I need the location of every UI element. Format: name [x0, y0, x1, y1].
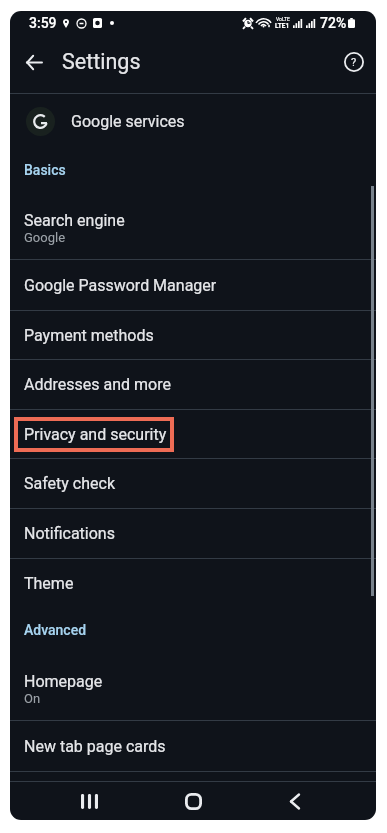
button[interactable]: Addresses and more: [10, 360, 376, 409]
staticText: Google: [24, 230, 66, 245]
button[interactable]: Google services: [10, 94, 376, 148]
staticText: Safety check: [24, 474, 115, 493]
staticText: Settings: [62, 49, 141, 74]
staticText: New tab page cards: [24, 737, 166, 756]
button[interactable]: Recent apps: [67, 782, 111, 820]
button[interactable]: Help: [334, 42, 374, 82]
staticText: Theme: [24, 574, 74, 593]
button[interactable]: Search engine: [10, 192, 376, 259]
staticText: Homepage: [24, 672, 103, 691]
staticText: Google services: [71, 112, 185, 131]
button[interactable]: Payment methods: [10, 311, 376, 359]
staticText: Basics: [24, 162, 66, 178]
button[interactable]: Google Password Manager: [10, 260, 376, 310]
button[interactable]: Homepage: [10, 652, 376, 720]
staticText: On: [24, 691, 41, 706]
staticText: ?: [351, 56, 357, 69]
staticText: 3:59: [29, 15, 57, 31]
button[interactable]: Home: [171, 782, 215, 820]
button[interactable]: New tab page cards: [10, 721, 376, 771]
button[interactable]: Safety check: [10, 459, 376, 508]
staticText: 72%: [320, 15, 347, 31]
staticText: Addresses and more: [24, 375, 171, 394]
staticText: VoLTE: [276, 16, 290, 22]
staticText: Search engine: [24, 211, 125, 230]
button[interactable]: Theme: [10, 559, 376, 608]
button[interactable]: Privacy and security: [10, 410, 376, 458]
staticText: Notifications: [24, 524, 115, 543]
button[interactable]: Back: [272, 782, 316, 820]
staticText: Privacy and security: [24, 425, 167, 444]
button[interactable]: Notifications: [10, 509, 376, 558]
staticText: Google Password Manager: [24, 276, 217, 295]
button[interactable]: Back: [14, 42, 54, 82]
staticText: LTE1: [275, 22, 290, 30]
staticText: Advanced: [24, 622, 87, 638]
staticText: Payment methods: [24, 326, 154, 345]
